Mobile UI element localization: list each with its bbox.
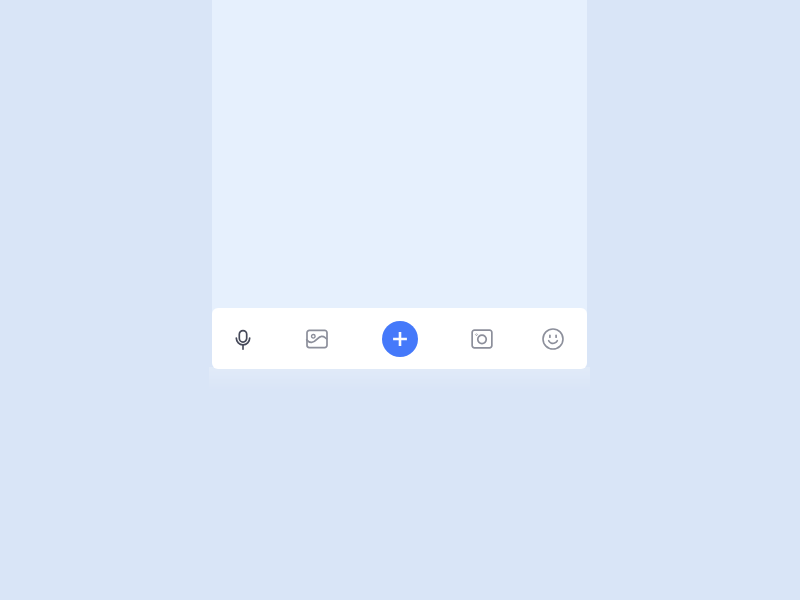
button[interactable]: Insert emoji	[533, 319, 573, 359]
button[interactable]: Record voice message	[223, 319, 263, 359]
button[interactable]: Take a photo	[462, 319, 502, 359]
button[interactable]: Pick photo from gallery	[297, 319, 337, 359]
button[interactable]: Add attachment	[382, 321, 418, 357]
